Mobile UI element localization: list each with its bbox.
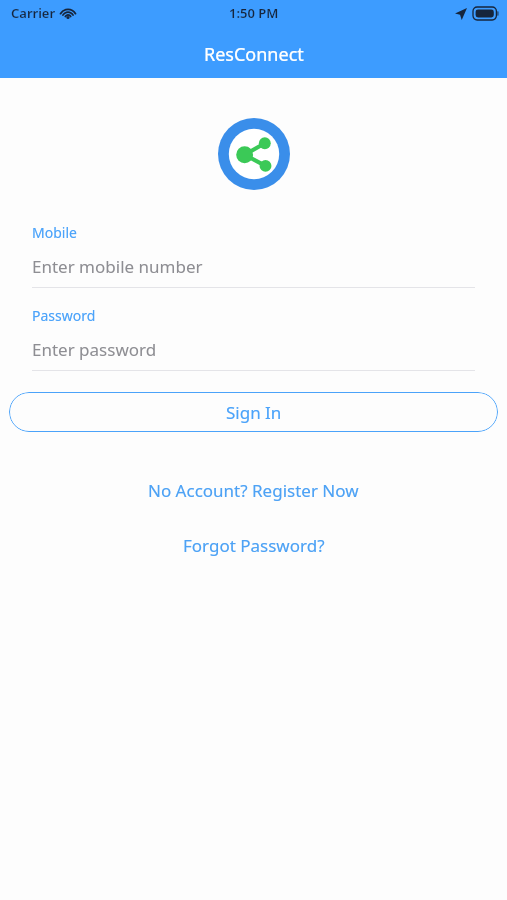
button[interactable]: No Account? Register Now <box>0 476 507 504</box>
staticText: 1:50 PM <box>229 4 279 22</box>
button[interactable]: Password <box>32 306 475 371</box>
button[interactable]: Mobile <box>32 223 475 288</box>
staticText: Mobile <box>32 223 77 242</box>
staticText: ResConnect <box>204 42 304 67</box>
staticText: No Account? Register Now <box>148 479 359 502</box>
staticText: Carrier <box>11 4 56 22</box>
button[interactable]: Forgot Password? <box>0 531 507 559</box>
staticText: Enter password <box>32 338 157 361</box>
staticText: Sign In <box>226 401 282 424</box>
staticText: Enter mobile number <box>32 255 203 278</box>
other: ResConnect logo <box>218 118 290 188</box>
staticText: Forgot Password? <box>183 534 325 557</box>
staticText: Password <box>32 306 96 325</box>
button[interactable]: Sign In <box>9 392 498 432</box>
